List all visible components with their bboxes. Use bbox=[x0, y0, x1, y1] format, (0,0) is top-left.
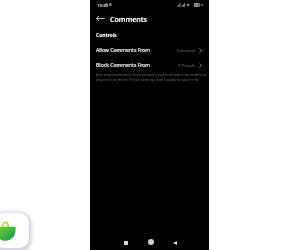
button[interactable]: Back bbox=[94, 12, 107, 24]
button[interactable]: Recents bbox=[120, 237, 131, 248]
button[interactable]: Allow Comments From bbox=[90, 43, 209, 57]
staticText: Comments bbox=[110, 14, 147, 24]
staticText: Any new comments from people you block w… bbox=[96, 72, 209, 82]
staticText: Everyone bbox=[177, 47, 196, 53]
staticText: Controls bbox=[96, 32, 117, 39]
staticText: 19:34 bbox=[97, 2, 108, 8]
button[interactable]: Shopping app bbox=[0, 213, 29, 248]
button[interactable]: Home bbox=[145, 236, 156, 247]
staticText: Block Comments From bbox=[96, 62, 151, 69]
staticText: Allow Comments From bbox=[96, 47, 151, 54]
button[interactable]: Back bbox=[169, 237, 180, 248]
staticText: 6 People bbox=[178, 62, 196, 68]
button[interactable]: Block Comments From bbox=[90, 58, 209, 72]
